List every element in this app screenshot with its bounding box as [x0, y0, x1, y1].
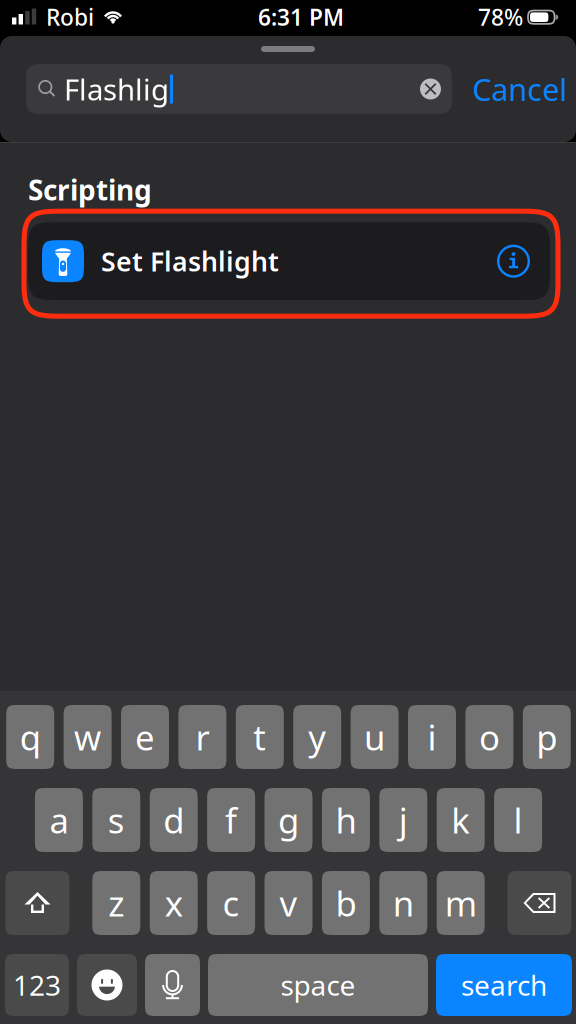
staticText: Set Flashlight	[101, 243, 279, 279]
staticText: Flashlig	[64, 69, 169, 108]
staticText: search	[461, 966, 547, 1004]
staticText: t	[253, 714, 266, 760]
button[interactable]: y	[293, 705, 341, 769]
button[interactable]: m	[437, 871, 485, 935]
staticText: 6:31 PM	[258, 2, 344, 32]
staticText: k	[451, 797, 470, 843]
button[interactable]: z	[92, 871, 140, 935]
staticText: j	[399, 797, 408, 843]
staticText: o	[479, 714, 500, 760]
button[interactable]: g	[264, 788, 312, 852]
staticText: Scripting	[28, 171, 152, 208]
button[interactable]: x	[150, 871, 198, 935]
staticText: 78%	[478, 2, 523, 32]
button[interactable]: v	[264, 871, 312, 935]
button[interactable]: r	[178, 705, 226, 769]
staticText: w	[74, 714, 101, 760]
button[interactable]: q	[6, 705, 54, 769]
staticText: Cancel	[472, 69, 567, 109]
staticText: 123	[13, 966, 61, 1004]
staticText: i	[427, 714, 436, 760]
button[interactable]: Shift	[5, 871, 69, 935]
button[interactable]: e	[121, 705, 169, 769]
staticText: h	[335, 797, 356, 843]
button[interactable]: k	[437, 788, 485, 852]
staticText: e	[135, 714, 155, 760]
button[interactable]: d	[150, 788, 198, 852]
staticText: s	[108, 797, 125, 843]
button[interactable]: s	[92, 788, 140, 852]
staticText: z	[108, 880, 124, 926]
button[interactable]: t	[236, 705, 284, 769]
staticText: m	[445, 880, 477, 926]
button[interactable]: search	[436, 954, 572, 1016]
button[interactable]: Dictate	[145, 954, 200, 1016]
button[interactable]: w	[64, 705, 112, 769]
staticText: p	[536, 714, 557, 760]
button[interactable]: space	[208, 954, 428, 1016]
button[interactable]: c	[207, 871, 255, 935]
staticText: c	[223, 880, 240, 926]
staticText: a	[49, 797, 68, 843]
staticText: v	[279, 880, 297, 926]
button[interactable]: o	[465, 705, 513, 769]
button[interactable]: l	[494, 788, 542, 852]
staticText: f	[225, 797, 237, 843]
button[interactable]: 123	[5, 954, 69, 1016]
staticText: u	[364, 714, 385, 760]
button[interactable]: Delete	[507, 871, 571, 935]
staticText: d	[163, 797, 184, 843]
button[interactable]: p	[523, 705, 571, 769]
staticText: Robi	[46, 2, 94, 32]
staticText: r	[195, 714, 209, 760]
staticText: g	[278, 797, 299, 843]
button[interactable]: Emoji	[77, 954, 137, 1016]
staticText: y	[308, 714, 326, 760]
staticText: space	[280, 966, 355, 1004]
button[interactable]: b	[322, 871, 370, 935]
button[interactable]: a	[35, 788, 83, 852]
button[interactable]: Clear text	[420, 78, 452, 99]
button[interactable]: f	[207, 788, 255, 852]
button[interactable]: Set Flashlight	[28, 222, 550, 300]
button[interactable]: h	[322, 788, 370, 852]
staticText: x	[165, 880, 183, 926]
button[interactable]: Cancel	[452, 64, 576, 114]
staticText: l	[514, 797, 523, 843]
button[interactable]: j	[379, 788, 427, 852]
staticText: q	[20, 714, 41, 760]
button[interactable]: i	[408, 705, 456, 769]
button[interactable]: n	[379, 871, 427, 935]
staticText: b	[335, 880, 356, 926]
button[interactable]: u	[351, 705, 399, 769]
staticText: n	[393, 880, 414, 926]
